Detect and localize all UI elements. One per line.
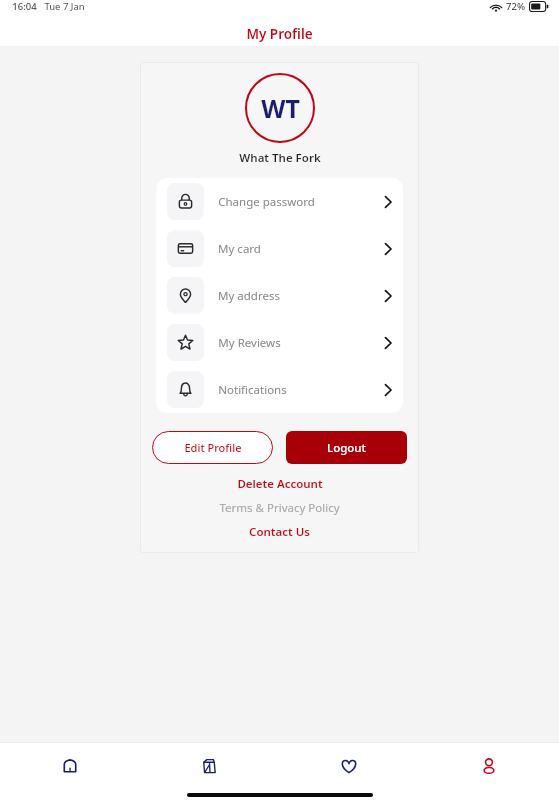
- staticText: My address: [218, 288, 280, 304]
- staticText: What The Fork: [239, 150, 321, 166]
- staticText: Delete Account: [237, 476, 323, 492]
- button[interactable]: Contact Us: [140, 524, 419, 540]
- button[interactable]: Profile: [419, 743, 559, 789]
- button[interactable]: My Reviews: [156, 319, 403, 366]
- staticText: 16:04: [12, 0, 37, 13]
- staticText: Change password: [218, 194, 315, 210]
- staticText: 72%: [506, 0, 525, 13]
- button[interactable]: Notifications: [156, 366, 403, 413]
- staticText: Terms & Privacy Policy: [219, 500, 340, 516]
- button[interactable]: Delete Account: [140, 476, 419, 492]
- button[interactable]: Favourites: [279, 743, 419, 789]
- staticText: Edit Profile: [184, 440, 242, 455]
- button[interactable]: Orders: [139, 743, 279, 789]
- staticText: Tue 7 Jan: [44, 0, 85, 13]
- staticText: WT: [261, 91, 300, 125]
- staticText: My Profile: [246, 25, 313, 43]
- button[interactable]: Terms & Privacy Policy: [140, 500, 419, 516]
- button[interactable]: Change password: [156, 178, 403, 225]
- button[interactable]: Edit Profile: [152, 431, 273, 464]
- staticText: My Reviews: [218, 335, 281, 351]
- button[interactable]: My address: [156, 272, 403, 319]
- staticText: Logout: [327, 440, 366, 456]
- button[interactable]: Logout: [286, 431, 407, 464]
- staticText: Contact Us: [249, 524, 310, 540]
- staticText: My card: [218, 241, 261, 257]
- staticText: Notifications: [218, 382, 287, 398]
- button[interactable]: My card: [156, 225, 403, 272]
- button[interactable]: Home: [0, 743, 139, 789]
